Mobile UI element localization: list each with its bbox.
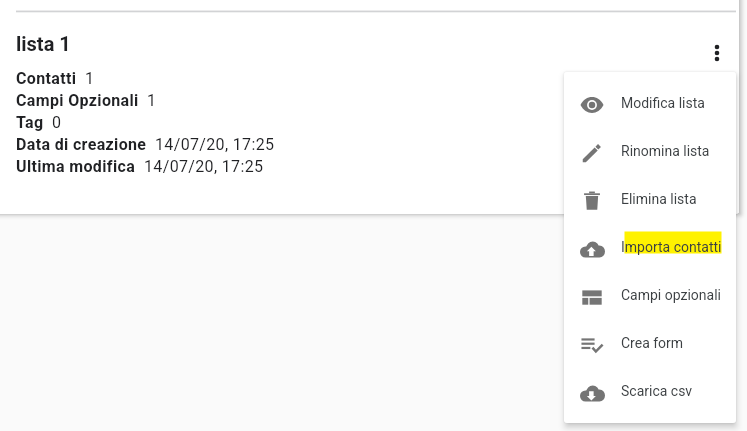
staticText: Crea form	[621, 335, 684, 351]
button[interactable]: Crea form	[564, 319, 736, 367]
button[interactable]: Elimina lista	[564, 175, 736, 223]
staticText: Tag	[16, 113, 44, 132]
staticText: Campi Opzionali	[16, 91, 139, 110]
staticText: 14/07/20, 17:25	[144, 157, 264, 176]
button[interactable]: Campi opzionali	[564, 271, 736, 319]
staticText: Modifica lista	[621, 95, 705, 111]
staticText: Data di creazione	[16, 135, 147, 154]
staticText: 0	[52, 113, 62, 132]
staticText: Importa contatti	[621, 239, 722, 255]
button[interactable]: More options	[700, 36, 733, 69]
staticText: Ultima modifica	[16, 157, 136, 176]
staticText: Elimina lista	[621, 191, 697, 207]
staticText: lista 1	[16, 32, 71, 55]
staticText: Scarica csv	[621, 383, 693, 399]
button[interactable]: Scarica csv	[564, 367, 736, 415]
staticText: 1	[147, 91, 157, 110]
button[interactable]: Modifica lista	[564, 79, 736, 127]
button[interactable]: Importa contatti	[564, 223, 736, 271]
staticText: Contatti	[16, 69, 77, 88]
staticText: 1	[85, 69, 95, 88]
staticText: Campi opzionali	[621, 287, 721, 303]
staticText: Rinomina lista	[621, 143, 710, 159]
staticText: 14/07/20, 17:25	[155, 135, 275, 154]
button[interactable]: Rinomina lista	[564, 127, 736, 175]
